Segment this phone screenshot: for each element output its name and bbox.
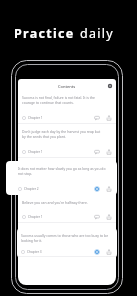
staticText: looking for it. bbox=[21, 238, 43, 243]
button[interactable]: Comment bbox=[94, 186, 100, 192]
button[interactable]: Don't judge each day by the harvest you … bbox=[18, 124, 116, 158]
staticText: Don't judge each day by the harvest you … bbox=[22, 129, 101, 134]
button[interactable]: Share bbox=[106, 115, 112, 121]
staticText: Chapter 1 bbox=[28, 150, 43, 154]
button[interactable]: Share bbox=[106, 186, 112, 192]
staticText: courage to continue that counts. bbox=[22, 100, 74, 105]
staticText: Practice bbox=[14, 25, 80, 42]
staticText: daily bbox=[80, 25, 115, 42]
button[interactable]: It does not matter how slowly you go as … bbox=[6, 161, 117, 195]
staticText: not stop. bbox=[18, 171, 33, 176]
button[interactable]: Share bbox=[106, 249, 112, 255]
staticText: Success usually comes to those who are t… bbox=[21, 233, 109, 238]
button[interactable]: Comment bbox=[94, 149, 100, 155]
button[interactable]: Close bbox=[107, 83, 113, 89]
button[interactable]: Comment bbox=[94, 214, 100, 220]
button[interactable]: Share bbox=[106, 149, 112, 155]
button[interactable]: Comment bbox=[94, 115, 100, 121]
staticText: Contents bbox=[58, 84, 76, 89]
button[interactable]: Share bbox=[106, 214, 112, 220]
staticText: by the seeds that you plant. bbox=[22, 134, 66, 139]
button[interactable]: Success is not final, failure is not fat… bbox=[18, 90, 116, 124]
button[interactable]: Success usually comes to those who are t… bbox=[17, 228, 117, 258]
staticText: Success is not final, failure is not fat… bbox=[22, 95, 95, 100]
button[interactable]: Believe you can and you're halfway there… bbox=[18, 195, 116, 223]
staticText: Chapter 1 bbox=[28, 215, 43, 219]
staticText: It does not matter how slowly you go as … bbox=[18, 166, 106, 171]
staticText: Believe you can and you're halfway there… bbox=[22, 200, 88, 205]
button[interactable]: Comment bbox=[94, 249, 100, 255]
staticText: Chapter 1 bbox=[28, 116, 43, 120]
staticText: Chapter 3 bbox=[27, 250, 42, 254]
staticText: Chapter 2 bbox=[24, 187, 39, 191]
